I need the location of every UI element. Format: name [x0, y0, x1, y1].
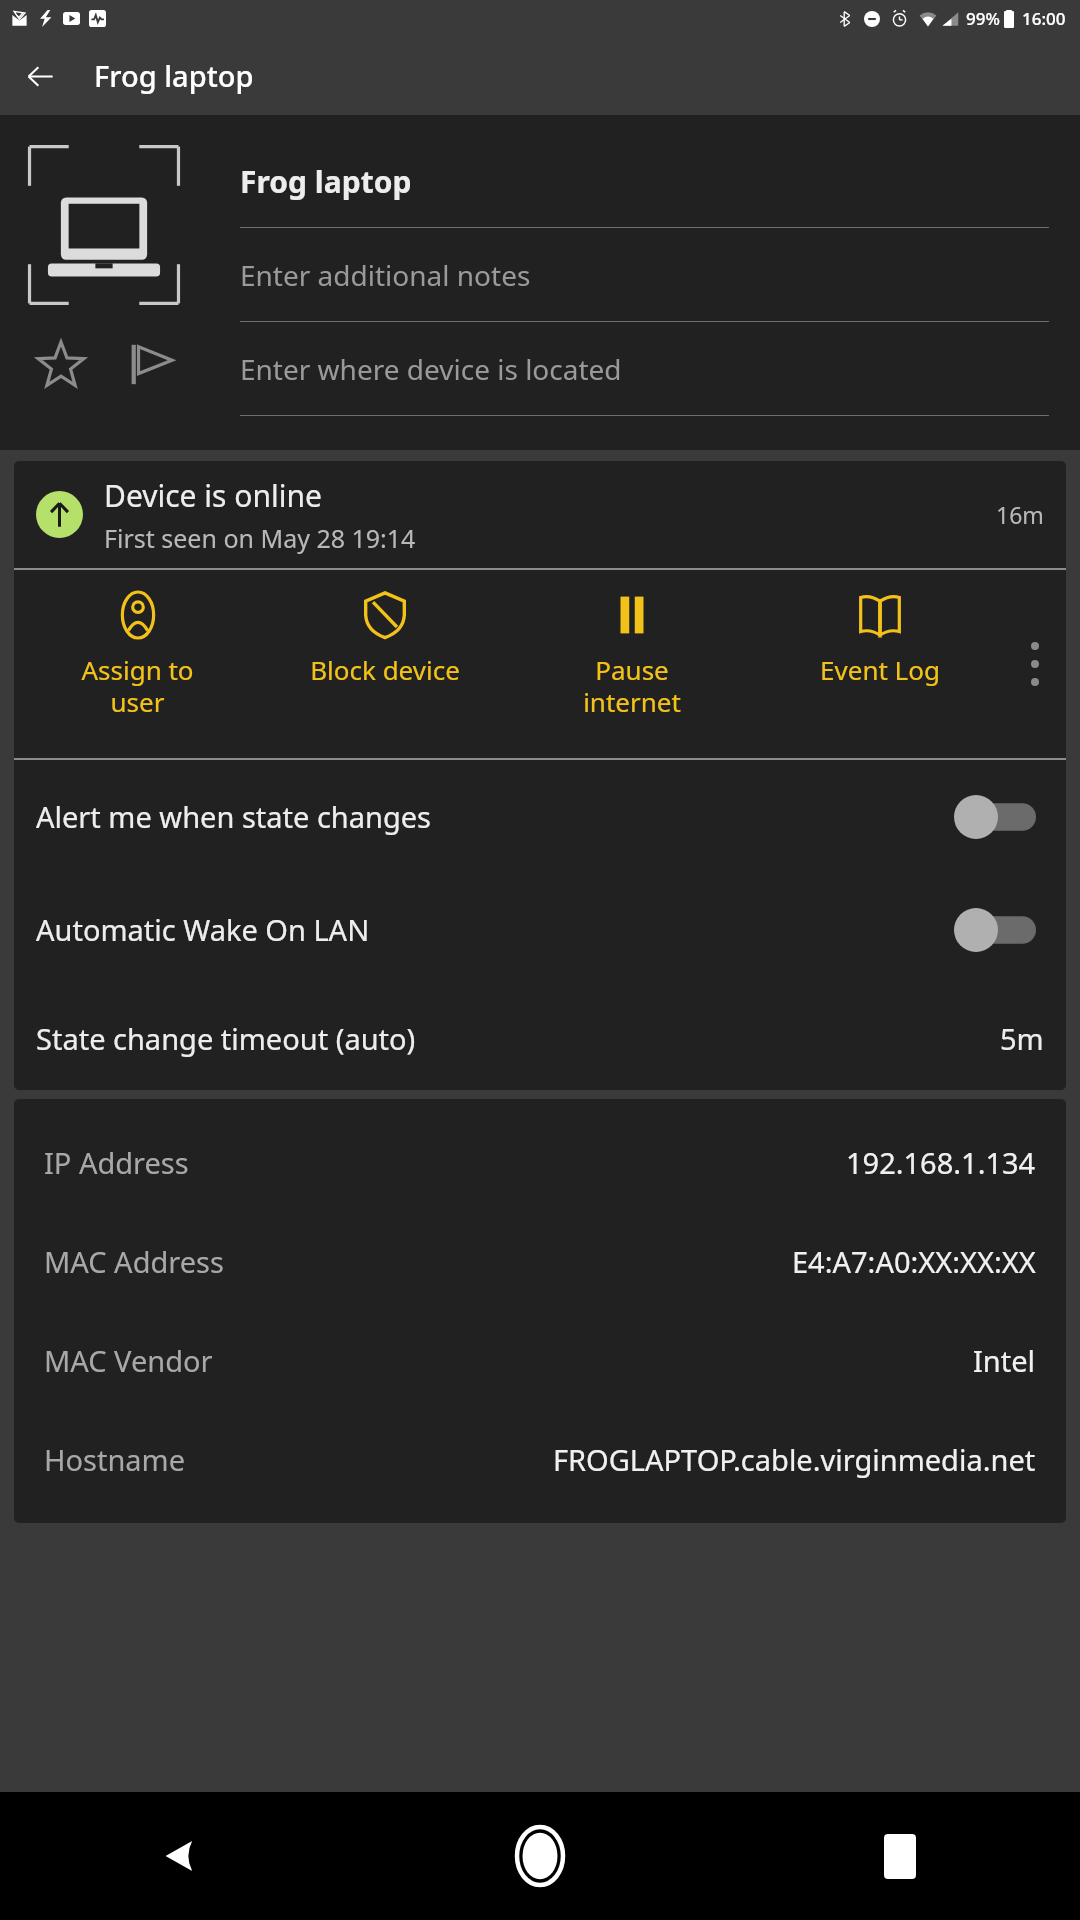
staticText: 16:00	[1022, 7, 1066, 30]
button[interactable]: Hostname	[44, 1410, 1036, 1509]
staticText: State change timeout (auto)	[36, 1019, 1000, 1058]
staticText: Intel	[973, 1341, 1036, 1380]
staticText: Event Log	[820, 652, 940, 687]
button[interactable]: State change timeout (auto)	[14, 986, 1066, 1090]
staticText: Alert me when state changes	[36, 797, 954, 836]
staticText: 5m	[1000, 1019, 1044, 1058]
staticText: Frog laptop	[240, 161, 412, 202]
staticText: MAC Vendor	[44, 1341, 213, 1380]
button[interactable]: Device is online	[14, 461, 1066, 568]
button[interactable]: Back	[16, 52, 64, 100]
staticText: Hostname	[44, 1440, 186, 1479]
button[interactable]: Back	[0, 1792, 360, 1920]
button[interactable]: Enter additional notes	[240, 228, 1049, 322]
button[interactable]: Recents	[720, 1792, 1080, 1920]
staticText: Automatic Wake On LAN	[36, 910, 954, 949]
button[interactable]: Frog laptop	[240, 135, 1049, 228]
button[interactable]: Automatic Wake On LAN	[14, 873, 1066, 986]
staticText: Enter additional notes	[240, 256, 531, 294]
button[interactable]: More options	[1004, 570, 1066, 758]
staticText: Device is online	[104, 475, 322, 516]
button[interactable]: Favourite	[30, 333, 92, 395]
staticText: Block device	[310, 652, 460, 687]
staticText: MAC Address	[44, 1242, 224, 1281]
button[interactable]: Assign to user	[14, 570, 261, 758]
staticText: Pause internet	[583, 652, 681, 720]
staticText: 16m	[996, 499, 1044, 530]
staticText: FROGLAPTOP.cable.virginmedia.net	[553, 1440, 1036, 1479]
button[interactable]: MAC Address	[44, 1212, 1036, 1311]
button[interactable]: Block device	[261, 570, 508, 758]
button[interactable]: Flag device	[120, 333, 182, 395]
button[interactable]: MAC Vendor	[44, 1311, 1036, 1410]
button[interactable]: Home	[360, 1792, 720, 1920]
button[interactable]: IP Address	[44, 1113, 1036, 1212]
button[interactable]: Enter where device is located	[240, 322, 1049, 416]
button[interactable]: Alert me when state changes	[14, 760, 1066, 873]
button[interactable]: Pause internet	[508, 570, 756, 758]
staticText: E4:A7:A0:XX:XX:XX	[792, 1242, 1036, 1281]
staticText: 99%	[966, 7, 1000, 30]
staticText: First seen on May 28 19:14	[104, 521, 416, 555]
button[interactable]: Event Log	[756, 570, 1004, 758]
staticText: Frog laptop	[94, 56, 254, 95]
staticText: Assign to user	[81, 652, 194, 720]
staticText: Enter where device is located	[240, 350, 622, 388]
staticText: 192.168.1.134	[846, 1143, 1036, 1182]
staticText: IP Address	[44, 1143, 189, 1182]
